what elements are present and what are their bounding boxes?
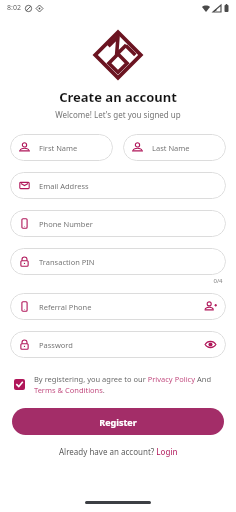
button[interactable]: Email Address	[10, 172, 226, 199]
staticText: Last Name	[152, 143, 218, 153]
staticText: Transaction PIN	[39, 257, 218, 267]
staticText: 8:02	[7, 3, 21, 13]
staticText: Welcome! Let's get you signed up	[55, 109, 181, 120]
staticText: First Name	[39, 143, 105, 153]
button[interactable]: Phone Number	[10, 210, 226, 237]
button[interactable]: Password	[10, 331, 226, 358]
staticText: Phone Number	[39, 219, 218, 229]
button[interactable]: Show password	[203, 337, 218, 352]
button[interactable]: Accept terms	[14, 374, 222, 395]
staticText: By registering, you agree to our Privacy…	[34, 374, 222, 395]
staticText: Register	[99, 416, 137, 428]
staticText: Create an account	[59, 88, 177, 106]
button[interactable]: Transaction PIN	[10, 248, 226, 275]
button[interactable]: Register	[12, 408, 224, 435]
button[interactable]: Already have an account? Login	[0, 446, 236, 457]
button[interactable]: Accept terms	[14, 379, 25, 390]
button[interactable]: Pick contact	[203, 299, 218, 314]
button[interactable]: Referral Phone	[10, 293, 226, 320]
button[interactable]: First Name	[10, 134, 113, 161]
staticText: Password	[39, 340, 203, 350]
staticText: Already have an account? Login	[59, 446, 178, 457]
staticText: Email Address	[39, 181, 218, 191]
button[interactable]: Last Name	[123, 134, 226, 161]
staticText: 0/4	[213, 277, 223, 285]
staticText: Referral Phone	[39, 302, 203, 312]
